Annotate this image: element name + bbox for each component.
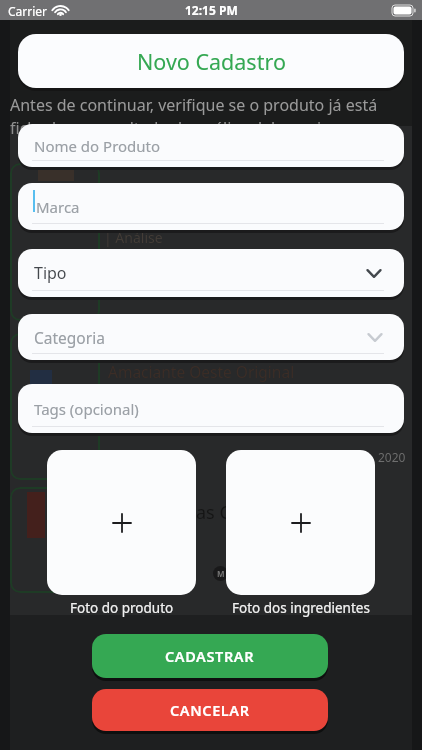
staticText: Carrier bbox=[8, 3, 48, 19]
staticText: M bbox=[217, 568, 225, 579]
staticText: Categoria bbox=[34, 327, 105, 348]
staticText: fichado e o resultado da análise dele aq… bbox=[10, 117, 322, 139]
staticText: | Análise bbox=[104, 228, 163, 247]
staticText: 12:15 PM bbox=[185, 2, 238, 18]
staticText: Tipo bbox=[34, 262, 67, 284]
staticText: Nome do Produto bbox=[34, 136, 161, 156]
staticText: Tags (opcional) bbox=[34, 399, 139, 419]
staticText: Foto do produto bbox=[70, 599, 174, 617]
staticText: as C bbox=[196, 500, 231, 525]
staticText: Marca bbox=[36, 197, 80, 217]
staticText: Amaciante Oeste Original bbox=[108, 361, 295, 382]
staticText: Novo Cadastro bbox=[137, 47, 286, 76]
staticText: 2020 bbox=[378, 449, 406, 465]
staticText: Antes de continuar, verifique se o produ… bbox=[10, 94, 378, 116]
staticText: Foto dos ingredientes bbox=[232, 599, 370, 617]
staticText: CANCELAR bbox=[170, 700, 250, 720]
staticText: CADASTRAR bbox=[165, 646, 255, 666]
